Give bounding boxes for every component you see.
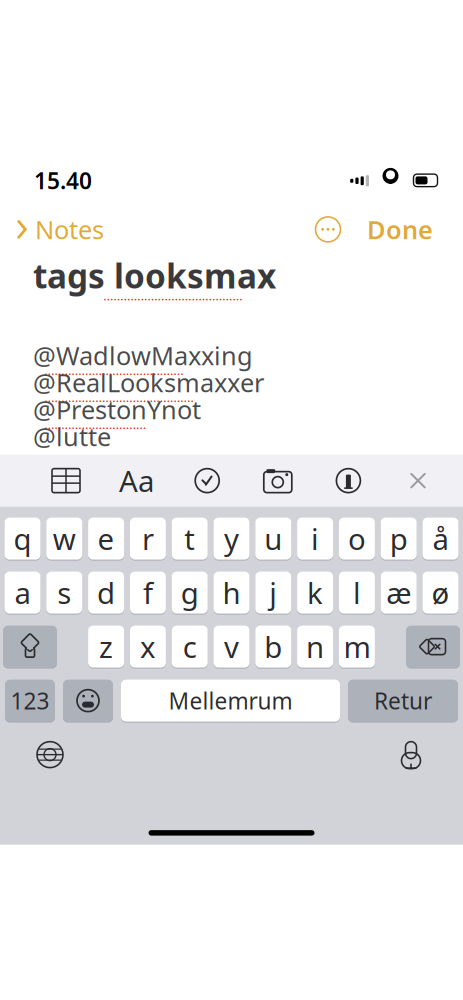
staticText: Aa — [119, 461, 154, 500]
button[interactable]: c — [172, 625, 208, 669]
button[interactable]: Table — [48, 463, 84, 499]
staticText: @lutte — [33, 420, 111, 453]
staticText: l — [353, 573, 361, 612]
staticText: j — [269, 573, 277, 612]
button[interactable]: t — [172, 517, 208, 561]
button[interactable]: Retur — [348, 679, 458, 723]
staticText: g — [181, 573, 199, 612]
staticText: Done — [367, 212, 433, 246]
button[interactable]: q — [4, 517, 40, 561]
button[interactable]: Checklist — [189, 463, 225, 499]
button[interactable]: ø — [422, 571, 458, 615]
staticText: Notes — [35, 212, 104, 246]
button[interactable]: Notes — [12, 206, 108, 252]
staticText: v — [224, 627, 239, 666]
staticText: 15.40 — [34, 165, 92, 195]
button[interactable]: s — [46, 571, 82, 615]
button[interactable]: Next keyboard — [28, 733, 72, 777]
button[interactable]: k — [297, 571, 333, 615]
button[interactable]: Format — [119, 463, 155, 499]
staticText: r — [142, 519, 154, 558]
staticText: z — [99, 627, 113, 666]
button[interactable]: p — [381, 517, 417, 561]
button[interactable]: Dictate — [389, 733, 433, 777]
button[interactable]: z — [88, 625, 124, 669]
button[interactable]: e — [88, 517, 124, 561]
staticText: y — [224, 519, 239, 558]
button[interactable]: Close keyboard — [401, 464, 435, 498]
button[interactable]: x — [130, 625, 166, 669]
button[interactable]: a — [4, 571, 40, 615]
button[interactable]: f — [130, 571, 166, 615]
staticText: tags looksmax — [33, 253, 276, 298]
staticText: e — [98, 519, 115, 558]
staticText: m — [343, 627, 370, 666]
staticText: å — [432, 519, 448, 558]
button[interactable]: m — [339, 625, 375, 669]
button[interactable]: w — [46, 517, 82, 561]
staticText: Mellemrum — [168, 686, 292, 716]
staticText: k — [307, 573, 323, 612]
staticText: t — [184, 519, 195, 558]
staticText: h — [222, 573, 240, 612]
staticText: i — [311, 519, 319, 558]
button[interactable]: æ — [381, 571, 417, 615]
staticText: d — [97, 573, 115, 612]
button[interactable]: u — [255, 517, 291, 561]
button[interactable]: Done — [361, 206, 439, 252]
button[interactable]: Mellemrum — [121, 679, 340, 723]
button[interactable]: Shift — [3, 625, 57, 669]
staticText: f — [143, 573, 153, 612]
staticText: s — [57, 573, 71, 612]
button[interactable]: å — [422, 517, 458, 561]
button[interactable]: l — [339, 571, 375, 615]
button[interactable]: g — [172, 571, 208, 615]
button[interactable]: n — [297, 625, 333, 669]
button[interactable]: v — [213, 625, 249, 669]
button[interactable]: Markup — [330, 463, 366, 499]
staticText: x — [140, 627, 156, 666]
button[interactable]: d — [88, 571, 124, 615]
staticText: ø — [431, 573, 449, 612]
staticText: @WadlowMaxxing — [33, 339, 253, 372]
staticText: 123 — [10, 686, 49, 716]
staticText: o — [348, 519, 366, 558]
button[interactable]: Delete — [406, 625, 460, 669]
button[interactable]: b — [255, 625, 291, 669]
button[interactable]: j — [255, 571, 291, 615]
button[interactable]: r — [130, 517, 166, 561]
staticText: c — [183, 627, 197, 666]
staticText: Retur — [374, 686, 432, 716]
staticText: æ — [386, 573, 411, 612]
button[interactable]: y — [213, 517, 249, 561]
staticText: n — [306, 627, 324, 666]
staticText: u — [264, 519, 282, 558]
button[interactable]: More — [311, 212, 345, 246]
staticText: q — [13, 519, 31, 558]
staticText: w — [53, 519, 76, 558]
staticText: a — [14, 573, 30, 612]
button[interactable]: h — [213, 571, 249, 615]
button[interactable]: 123 — [5, 679, 55, 723]
button[interactable]: i — [297, 517, 333, 561]
staticText: @PrestonYnot — [33, 393, 201, 426]
button[interactable]: Camera — [260, 463, 296, 499]
staticText: b — [264, 627, 282, 666]
staticText: @RealLooksmaxxer — [33, 366, 264, 399]
button[interactable]: o — [339, 517, 375, 561]
staticText: p — [390, 519, 408, 558]
button[interactable]: Emoji — [63, 679, 113, 723]
